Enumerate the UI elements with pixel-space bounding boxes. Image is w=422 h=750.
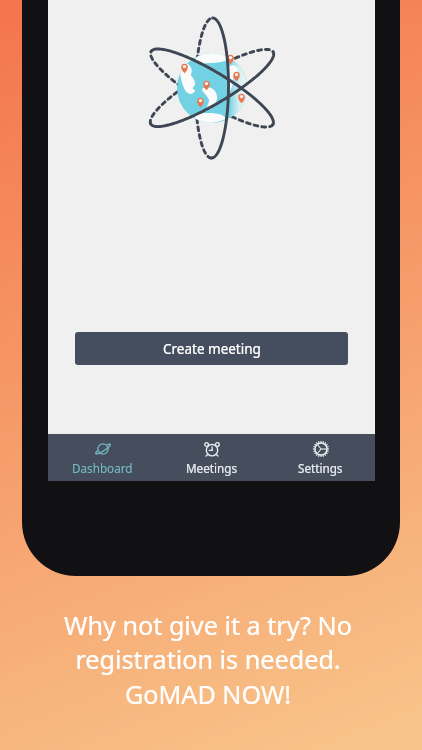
button[interactable]: Create meeting [75,332,348,365]
button[interactable]: Settings [266,434,375,481]
staticText: Dashboard [72,460,133,476]
staticText: Why not give it a try? No registration i… [0,608,419,712]
button[interactable]: Meetings [157,434,266,481]
staticText: Meetings [186,460,238,476]
button[interactable]: Dashboard [48,434,157,481]
staticText: Settings [298,460,343,476]
staticText: Create meeting [163,340,261,358]
